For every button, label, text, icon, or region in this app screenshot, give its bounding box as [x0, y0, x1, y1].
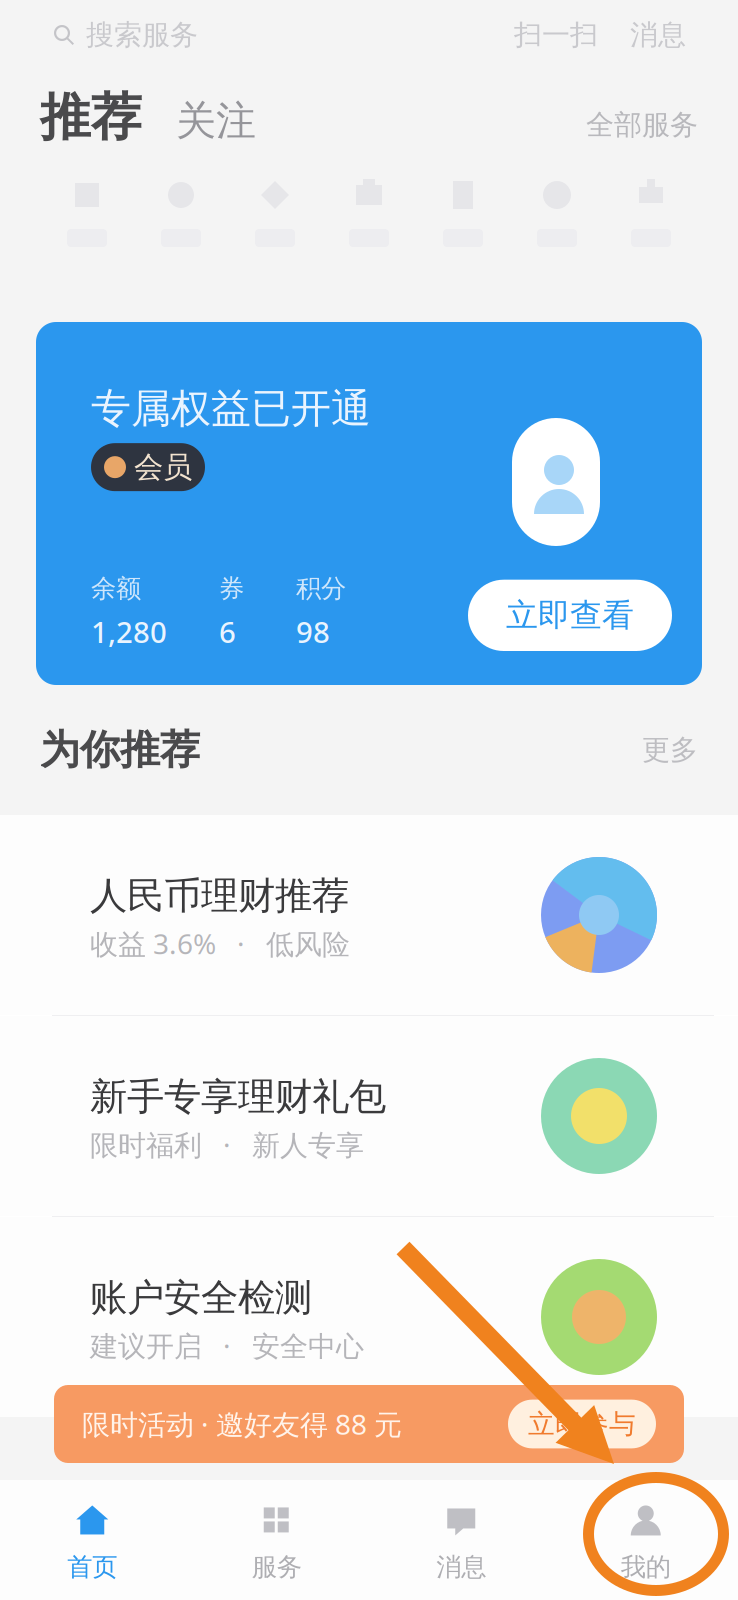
- staticText: 限时福利 · 新人专享: [90, 1126, 364, 1163]
- button[interactable]: [510, 165, 604, 322]
- button[interactable]: 关注: [176, 96, 256, 146]
- staticText: 更多: [642, 733, 698, 767]
- staticText: 服务: [252, 1551, 302, 1582]
- button[interactable]: 人民币理财推荐: [0, 815, 738, 1015]
- button[interactable]: 搜索服务: [52, 12, 198, 58]
- button[interactable]: 首页: [0, 1480, 184, 1600]
- staticText: 为你推荐: [40, 725, 200, 774]
- staticText: 限时活动 · 邀好友得 88 元: [82, 1405, 402, 1443]
- staticText: 券: [219, 573, 244, 604]
- staticText: 专属权益已开通: [91, 384, 371, 433]
- button[interactable]: [40, 165, 134, 322]
- button[interactable]: 账户安全检测: [0, 1217, 738, 1417]
- staticText: 推荐: [40, 86, 142, 149]
- staticText: 账户安全检测: [90, 1275, 312, 1321]
- button[interactable]: 服务: [184, 1480, 369, 1600]
- staticText: 建议开启 · 安全中心: [90, 1327, 364, 1364]
- button[interactable]: 更多: [642, 733, 698, 767]
- button[interactable]: 我的: [553, 1480, 738, 1600]
- button[interactable]: 专属权益已开通: [36, 322, 702, 685]
- staticText: 积分: [296, 573, 346, 604]
- staticText: 人民币理财推荐: [90, 873, 349, 919]
- staticText: 扫一扫 消息: [514, 18, 686, 52]
- staticText: 1,280: [91, 612, 167, 651]
- staticText: 关注: [176, 96, 256, 146]
- staticText: 搜索服务: [86, 18, 198, 52]
- staticText: 6: [219, 612, 236, 651]
- button[interactable]: 新手专享理财礼包: [0, 1016, 738, 1216]
- staticText: 98: [296, 612, 330, 651]
- staticText: 立即参与: [528, 1408, 636, 1440]
- staticText: 全部服务: [586, 108, 698, 142]
- staticText: 余额: [91, 573, 141, 604]
- button[interactable]: 扫一扫 消息: [514, 12, 686, 58]
- button[interactable]: 全部服务: [586, 108, 698, 142]
- staticText: 我的: [621, 1551, 671, 1582]
- button[interactable]: [416, 165, 510, 322]
- staticText: 立即查看: [506, 596, 634, 635]
- staticText: 新手专享理财礼包: [90, 1074, 386, 1120]
- staticText: 收益 3.6% · 低风险: [90, 925, 350, 962]
- staticText: 会员: [134, 449, 192, 485]
- button[interactable]: 推荐: [40, 86, 142, 149]
- button[interactable]: 限时活动 · 邀好友得 88 元: [54, 1385, 684, 1463]
- staticText: 消息: [436, 1551, 486, 1582]
- staticText: 首页: [67, 1551, 117, 1582]
- button[interactable]: 消息: [369, 1480, 553, 1600]
- button[interactable]: [322, 165, 416, 322]
